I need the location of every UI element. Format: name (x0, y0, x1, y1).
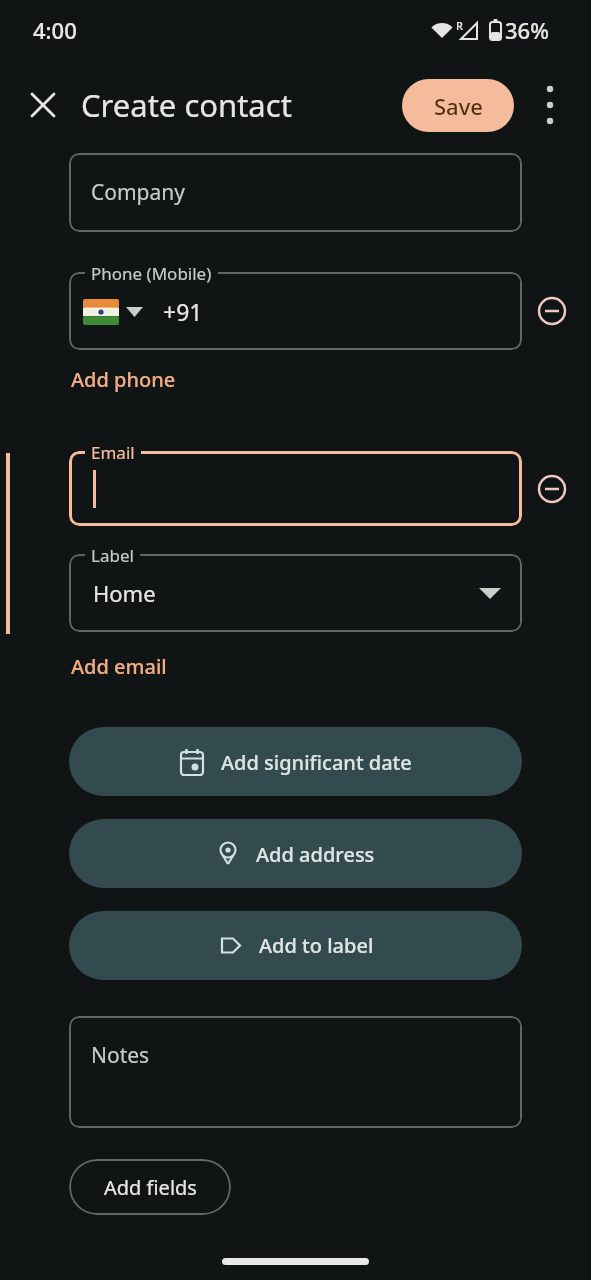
staticText: Add fields (104, 1174, 197, 1201)
button[interactable] (530, 289, 574, 333)
staticText: Company (91, 178, 185, 207)
staticText: R (456, 18, 463, 33)
staticText: Notes (91, 1041, 150, 1070)
staticText: Email (91, 441, 135, 464)
button[interactable]: Add phone (71, 366, 176, 393)
button[interactable]: Add to label (69, 911, 522, 980)
button[interactable] (528, 83, 572, 127)
button[interactable]: Save (402, 79, 514, 132)
staticText: 4:00 (33, 15, 77, 45)
button[interactable]: Add significant date (69, 727, 522, 796)
button[interactable]: Add email (71, 653, 167, 680)
staticText: 36% (505, 15, 549, 45)
button[interactable] (530, 467, 574, 511)
button[interactable]: Notes (69, 1016, 522, 1128)
staticText: Save (434, 91, 483, 121)
button[interactable] (69, 451, 522, 526)
staticText: Add address (256, 841, 375, 868)
staticText: Phone (Mobile) (91, 262, 212, 285)
button[interactable]: Company (69, 153, 522, 232)
button[interactable]: Home (69, 554, 522, 632)
staticText: Label (91, 544, 134, 567)
staticText: Home (93, 578, 156, 608)
staticText: Add significant date (221, 749, 412, 776)
staticText: Create contact (81, 84, 292, 126)
staticText: Add to label (259, 932, 374, 959)
button[interactable]: +91 (69, 272, 522, 350)
button[interactable]: Add fields (69, 1159, 231, 1215)
button[interactable] (24, 86, 62, 124)
staticText: +91 (163, 296, 203, 327)
button[interactable]: Add address (69, 819, 522, 888)
